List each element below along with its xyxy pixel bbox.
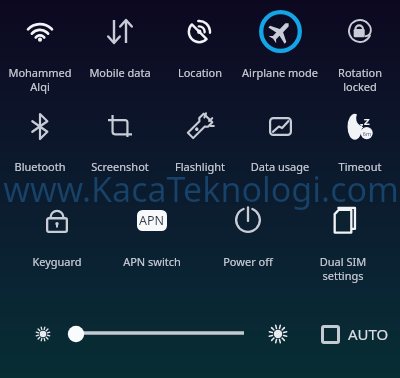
staticText: Bluetooth (0, 159, 80, 174)
button[interactable]: Data usage (240, 94, 320, 166)
staticText: APN (139, 212, 165, 229)
button[interactable]: Timeout (320, 94, 400, 166)
button[interactable]: Location (160, 0, 240, 71)
staticText: Dual SIM settings (294, 254, 392, 284)
staticText: Location (160, 65, 240, 80)
button[interactable]: Power off (199, 188, 297, 260)
staticText: 6m (361, 130, 373, 137)
button[interactable]: Brightness slider (60, 318, 260, 350)
button[interactable]: AUTO (321, 322, 389, 346)
button[interactable]: Rotation locked (320, 0, 400, 71)
staticText: Mobile data (80, 65, 160, 80)
staticText: z (360, 121, 364, 130)
button[interactable]: Wi-Fi Mohammed Alqi (0, 0, 80, 71)
staticText: Rotation locked (320, 65, 400, 95)
button[interactable]: Flashlight (160, 94, 240, 166)
staticText: Screenshot (80, 159, 160, 174)
button[interactable]: Keyguard (8, 188, 106, 260)
staticText: Data usage (240, 159, 320, 174)
staticText: AUTO (348, 324, 389, 344)
staticText: Timeout (320, 159, 400, 174)
staticText: Mohammed Alqi (0, 65, 80, 95)
staticText: Flashlight (160, 159, 240, 174)
staticText: Power off (199, 254, 297, 269)
button[interactable]: Bluetooth (0, 94, 80, 166)
button[interactable]: Mobile data (80, 0, 160, 71)
button[interactable]: Airplane mode (240, 0, 320, 71)
staticText: Airplane mode (240, 65, 320, 80)
button[interactable]: APN switch (103, 188, 201, 260)
staticText: Keyguard (8, 254, 106, 269)
button[interactable]: Screenshot (80, 94, 160, 166)
staticText: www.KacaTeknologi.com (1, 166, 400, 212)
staticText: Z (364, 115, 370, 128)
button[interactable]: Dual SIM settings (294, 188, 392, 260)
staticText: APN switch (103, 254, 201, 269)
